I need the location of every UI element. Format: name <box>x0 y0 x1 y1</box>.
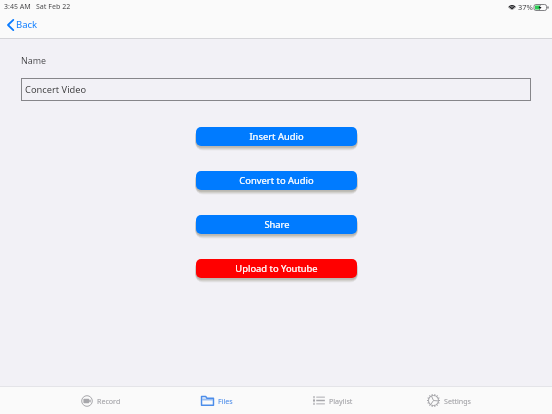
staticText: Insert Audio <box>249 130 304 143</box>
other: Record <box>81 395 93 407</box>
other: Settings <box>427 394 440 407</box>
staticText: Playlist <box>329 396 353 406</box>
staticText: Name <box>21 54 47 66</box>
staticText: Back <box>16 18 38 31</box>
other: Files <box>201 395 214 406</box>
staticText: Concert Video <box>25 83 87 96</box>
staticText: Sat Feb 22 <box>36 2 71 12</box>
button[interactable]: Back <box>0 15 44 34</box>
staticText: Share <box>264 218 290 231</box>
staticText: Settings <box>444 396 471 406</box>
button[interactable]: Record <box>42 387 159 414</box>
button[interactable]: Playlist <box>275 387 391 414</box>
staticText: Files <box>218 396 233 406</box>
button[interactable]: Share <box>196 215 357 234</box>
button[interactable]: Files <box>159 387 275 414</box>
button[interactable]: Convert to Audio <box>196 171 357 190</box>
button[interactable]: Concert Video <box>21 78 531 101</box>
staticText: Upload to Youtube <box>235 262 318 275</box>
button[interactable]: Settings <box>391 387 507 414</box>
button[interactable]: Insert Audio <box>196 127 357 146</box>
button[interactable]: Upload to Youtube <box>196 259 357 278</box>
staticText: Record <box>97 396 121 406</box>
staticText: 37% <box>518 2 533 12</box>
other: Playlist <box>313 395 325 406</box>
staticText: 3:45 AM <box>4 2 31 12</box>
staticText: Convert to Audio <box>239 174 314 187</box>
